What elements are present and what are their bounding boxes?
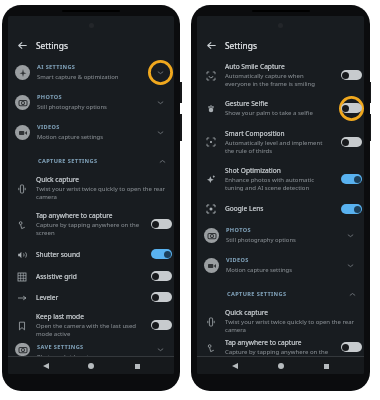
staticText: Smart Composition [225, 129, 285, 138]
button[interactable]: VIDEOS [197, 250, 364, 280]
staticText: SAVE SETTINGS [37, 343, 84, 351]
button[interactable]: Gesture Selfie [197, 93, 364, 123]
button[interactable]: Home [273, 358, 289, 374]
button[interactable]: PHOTOS [197, 220, 364, 250]
button[interactable]: Auto Smile Capture [197, 57, 364, 93]
staticText: Twist your wrist twice quickly to open t… [36, 185, 174, 201]
button[interactable]: Recents [318, 358, 334, 374]
button[interactable]: Back [227, 358, 243, 374]
button[interactable]: AI SETTINGS [8, 57, 174, 87]
staticText: Still photography options [226, 236, 296, 244]
button[interactable]: VIDEOS [8, 117, 174, 147]
button[interactable]: Back [201, 35, 221, 55]
button[interactable]: SAVE SETTINGS [8, 343, 174, 356]
staticText: Motion capture settings [226, 266, 292, 274]
staticText: Automatically capture when everyone in t… [225, 72, 325, 88]
button[interactable] [341, 174, 362, 184]
staticText: Tap anywhere to capture [36, 211, 113, 220]
button[interactable]: Back [12, 35, 32, 55]
staticText: Show your palm to take a selfie [225, 109, 313, 117]
staticText: Quick capture [225, 308, 269, 317]
button[interactable] [341, 204, 362, 214]
staticText: Shot Optimization [225, 166, 281, 175]
staticText: Automatically level and implement the ru… [225, 139, 325, 155]
staticText: PHOTOS [226, 226, 251, 234]
button[interactable]: Shot Optimization [197, 160, 364, 197]
button[interactable]: Shutter sound [8, 243, 174, 265]
staticText: Settings [36, 40, 68, 51]
staticText: CAPTURE SETTINGS [227, 290, 287, 298]
button[interactable]: Tap anywhere to capture [8, 205, 174, 243]
staticText: Capture by tapping anywhere on the scree… [225, 348, 332, 356]
staticText: Smart capture & optimization [37, 73, 119, 81]
button[interactable]: Smart Composition [197, 123, 364, 160]
staticText: Motion capture settings [37, 133, 103, 141]
staticText: CAPTURE SETTINGS [38, 157, 98, 165]
staticText: Quick capture [36, 175, 80, 184]
staticText: Settings [225, 40, 257, 51]
staticText: VIDEOS [37, 123, 60, 131]
staticText: Auto Smile Capture [225, 62, 285, 71]
button[interactable]: Keep last mode [8, 307, 174, 343]
staticText: Enhance photos with automatic tuning and… [225, 176, 325, 192]
button[interactable]: Home [83, 358, 99, 374]
staticText: Capture by tapping anywhere on the scree… [36, 221, 143, 237]
button[interactable]: Back [38, 358, 54, 374]
staticText: Photo and video storage [37, 353, 105, 356]
button[interactable]: Tap anywhere to capture [197, 338, 364, 356]
button[interactable] [151, 219, 172, 229]
button[interactable]: Google Lens [197, 197, 364, 220]
staticText: Tap anywhere to capture [225, 338, 302, 347]
button[interactable] [341, 137, 362, 147]
staticText: Shutter sound [36, 250, 81, 259]
staticText: AI SETTINGS [37, 63, 76, 71]
button[interactable]: PHOTOS [8, 87, 174, 117]
button[interactable] [341, 70, 362, 80]
staticText: Still photography options [37, 103, 107, 111]
button[interactable] [151, 292, 172, 302]
button[interactable]: Quick capture [197, 304, 364, 338]
button[interactable]: Quick capture [8, 171, 174, 205]
button[interactable] [341, 103, 362, 113]
staticText: Google Lens [225, 204, 264, 213]
button[interactable]: Assistive grid [8, 265, 174, 287]
staticText: VIDEOS [226, 256, 249, 264]
button[interactable] [151, 320, 172, 330]
staticText: Assistive grid [36, 272, 77, 281]
staticText: Open the camera with the last used mode … [36, 322, 142, 338]
button[interactable] [341, 342, 362, 352]
button[interactable]: CAPTURE SETTINGS [8, 151, 174, 171]
button[interactable]: Recents [129, 358, 145, 374]
button[interactable]: CAPTURE SETTINGS [197, 284, 364, 304]
staticText: PHOTOS [37, 93, 62, 101]
button[interactable] [151, 249, 172, 259]
staticText: Twist your wrist twice quickly to open t… [225, 318, 364, 334]
staticText: Gesture Selfie [225, 99, 268, 108]
staticText: Leveler [36, 293, 59, 302]
button[interactable]: Leveler [8, 287, 174, 307]
button[interactable] [151, 271, 172, 281]
staticText: Keep last mode [36, 312, 84, 321]
